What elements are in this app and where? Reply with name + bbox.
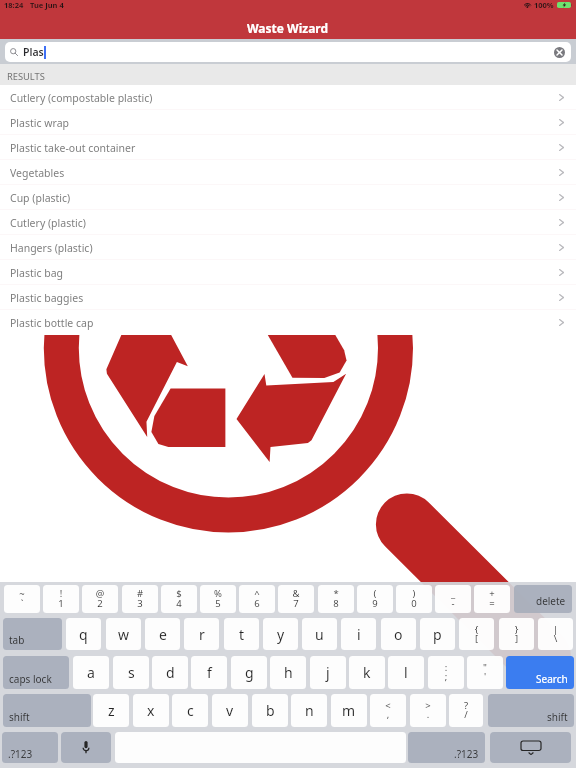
button[interactable]: Vegetables — [0, 160, 576, 185]
button[interactable]: Hangers (plastic) — [0, 235, 576, 260]
staticText: v — [226, 701, 234, 720]
button[interactable]: _ — [435, 585, 471, 613]
button[interactable]: r — [184, 618, 219, 650]
staticText: .?123 — [454, 747, 479, 761]
button[interactable]: Plastic bottle cap — [0, 310, 576, 335]
button[interactable]: Hide keyboard — [490, 732, 571, 763]
button[interactable]: Cutlery (plastic) — [0, 210, 576, 235]
staticText: 18:24 — [4, 0, 24, 10]
button[interactable]: j — [310, 656, 346, 689]
staticText: 2 — [82, 597, 118, 610]
button[interactable]: d — [152, 656, 188, 689]
button[interactable]: caps lock — [3, 656, 69, 689]
staticText: 3 — [122, 597, 158, 610]
staticText: ^ — [239, 587, 275, 600]
button[interactable]: .?123 — [2, 732, 58, 763]
button[interactable]: @ — [82, 585, 118, 613]
button[interactable]: g — [231, 656, 267, 689]
button[interactable]: delete — [514, 585, 572, 613]
button[interactable]: z — [93, 694, 129, 727]
button[interactable]: + — [474, 585, 510, 613]
button[interactable]: > — [410, 694, 446, 727]
button[interactable]: Cup (plastic) — [0, 185, 576, 210]
button[interactable]: Plastic take-out container — [0, 135, 576, 160]
staticText: shift — [9, 710, 30, 724]
button[interactable]: y — [263, 618, 298, 650]
button[interactable]: tab — [3, 618, 62, 650]
button[interactable]: $ — [161, 585, 197, 613]
button[interactable]: % — [200, 585, 236, 613]
staticText: Plastic baggies — [10, 291, 84, 305]
button[interactable]: ? — [449, 694, 483, 727]
button[interactable]: p — [420, 618, 455, 650]
button[interactable]: Plastic bag — [0, 260, 576, 285]
button[interactable]: f — [191, 656, 227, 689]
button[interactable]: : — [428, 656, 464, 689]
button[interactable]: m — [331, 694, 367, 727]
button[interactable]: Plas — [5, 42, 571, 62]
button[interactable]: u — [302, 618, 337, 650]
staticText: 1 — [43, 597, 79, 610]
button[interactable]: shift — [3, 694, 91, 727]
button[interactable]: Plastic baggies — [0, 285, 576, 310]
button[interactable]: & — [278, 585, 314, 613]
button[interactable]: n — [291, 694, 327, 727]
button[interactable]: * — [318, 585, 354, 613]
button[interactable]: ( — [357, 585, 393, 613]
staticText: @ — [82, 587, 118, 600]
staticText: ] — [499, 632, 534, 645]
button[interactable]: x — [133, 694, 169, 727]
staticText: Hangers (plastic) — [10, 241, 93, 255]
staticText: 5 — [200, 597, 236, 610]
staticText: caps lock — [9, 672, 52, 686]
staticText: Plastic take-out container — [10, 141, 136, 155]
button[interactable]: h — [270, 656, 306, 689]
button[interactable]: q — [66, 618, 101, 650]
staticText: j — [326, 663, 330, 682]
staticText: 6 — [239, 597, 275, 610]
button[interactable]: v — [212, 694, 248, 727]
button[interactable]: ~ — [4, 585, 40, 613]
button[interactable]: shift — [488, 694, 574, 727]
button[interactable]: t — [224, 618, 259, 650]
staticText: > — [410, 699, 446, 712]
staticText: / — [449, 708, 483, 721]
button[interactable]: l — [388, 656, 424, 689]
button[interactable]: s — [113, 656, 149, 689]
staticText: } — [499, 623, 534, 636]
button[interactable]: c — [172, 694, 208, 727]
staticText: ( — [357, 587, 393, 600]
staticText: = — [474, 597, 510, 610]
button[interactable]: Plastic wrap — [0, 110, 576, 135]
button[interactable]: e — [145, 618, 180, 650]
button[interactable]: ^ — [239, 585, 275, 613]
staticText: & — [278, 587, 314, 600]
button[interactable]: a — [73, 656, 109, 689]
staticText: a — [87, 663, 95, 682]
button[interactable]: ! — [43, 585, 79, 613]
button[interactable]: Search — [506, 656, 574, 689]
button[interactable]: w — [106, 618, 141, 650]
staticText: ) — [396, 587, 432, 600]
button[interactable]: Dictate — [61, 732, 111, 763]
button[interactable]: i — [341, 618, 376, 650]
button[interactable]: # — [122, 585, 158, 613]
button[interactable]: k — [349, 656, 385, 689]
staticText: % — [200, 587, 236, 600]
staticText: s — [128, 663, 135, 682]
staticText: $ — [161, 587, 197, 600]
staticText: 100% — [534, 0, 554, 10]
button[interactable]: < — [370, 694, 406, 727]
button[interactable]: Clear text — [554, 47, 565, 58]
button[interactable]: Cutlery (compostable plastic) — [0, 85, 576, 110]
button[interactable]: o — [381, 618, 416, 650]
button[interactable]: | — [538, 618, 573, 650]
button[interactable]: b — [252, 694, 288, 727]
button[interactable]: .?123 — [408, 732, 485, 763]
button[interactable]: ) — [396, 585, 432, 613]
button[interactable]: { — [459, 618, 494, 650]
staticText: h — [284, 663, 293, 682]
button[interactable]: } — [499, 618, 534, 650]
button[interactable]: " — [467, 656, 503, 689]
